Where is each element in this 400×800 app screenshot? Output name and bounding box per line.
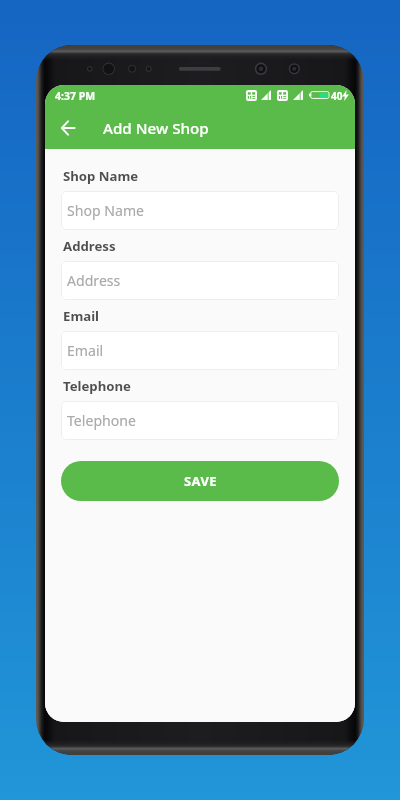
staticText: Shop Name: [63, 167, 139, 185]
staticText: Telephone: [63, 377, 131, 395]
staticText: 40: [331, 89, 343, 103]
staticText: 4:37 PM: [55, 89, 96, 103]
staticText: Address: [63, 237, 116, 255]
button[interactable]: SAVE: [61, 461, 339, 501]
staticText: Address: [67, 271, 121, 290]
button[interactable]: Telephone: [61, 401, 339, 440]
button[interactable]: Email: [61, 331, 339, 370]
button[interactable]: Address: [61, 261, 339, 300]
staticText: Email: [67, 341, 104, 360]
staticText: SAVE: [184, 472, 217, 490]
button[interactable]: Shop Name: [61, 191, 339, 230]
button[interactable]: Back: [51, 111, 85, 145]
staticText: Shop Name: [67, 201, 145, 220]
staticText: Add New Shop: [103, 118, 209, 139]
staticText: Email: [63, 307, 100, 325]
staticText: Telephone: [67, 411, 136, 430]
